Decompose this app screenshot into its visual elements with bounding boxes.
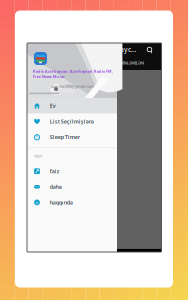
staticText: Radio Azerbaycan: Azerbaycan Radio FM, F… [33,68,113,79]
button[interactable]: haqqında [27,195,117,210]
button[interactable]: List Seçilmişlərə [27,114,117,129]
staticText: Ev [50,102,56,109]
staticText: rbayc… [113,45,136,54]
button[interactable]: faiz [27,163,117,179]
button[interactable]: Search [144,43,155,56]
staticText: X DİNLƏNİLƏN [116,60,144,66]
button[interactable]: Sleep Timer [27,129,117,145]
button[interactable]: daha [27,179,117,195]
staticText: haqqında [50,199,73,206]
staticText: Sleep Timer [50,133,80,141]
staticText: digər [34,153,43,158]
staticText: List Seçilmişlərə [50,118,94,125]
staticText: daha [50,183,62,190]
button[interactable]: Ev [27,98,117,114]
staticText: azeritech09@gmail.com [51,83,94,89]
staticText: faiz [50,168,60,175]
